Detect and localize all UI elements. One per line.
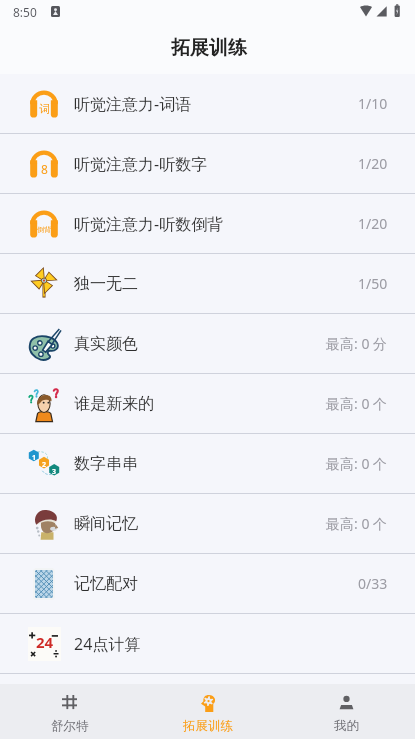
button[interactable]: 真实颜色 [0, 314, 415, 373]
staticText: 最高: 0 个 [326, 514, 388, 533]
staticText: 听觉注意力-听数字 [74, 153, 208, 175]
button[interactable]: 8 [0, 134, 415, 193]
button[interactable]: 我的 [277, 684, 415, 739]
button[interactable]: 瞬间记忆 [0, 494, 415, 553]
button[interactable]: 倒背 [0, 194, 415, 253]
other: 拓展训练 [201, 695, 216, 712]
staticText: 最高: 0 个 [326, 394, 388, 413]
staticText: 3 [52, 467, 57, 477]
staticText: 1 [32, 453, 37, 463]
staticText: 记忆配对 [74, 574, 138, 594]
staticText: 1/10 [358, 94, 388, 113]
staticText: 24 [36, 632, 54, 652]
staticText: 听觉注意力-词语 [74, 93, 192, 115]
staticText: 8 [41, 161, 48, 177]
button[interactable]: 舒尔特 [0, 684, 139, 739]
staticText: 8:50 [13, 4, 37, 20]
button[interactable]: 记忆配对 [0, 554, 415, 613]
button[interactable]: 独一无二 [0, 254, 415, 313]
staticText: 1/50 [358, 274, 388, 293]
staticText: 词 [39, 102, 50, 116]
staticText: 瞬间记忆 [74, 514, 138, 534]
staticText: 我的 [334, 718, 359, 734]
button[interactable]: 拓展训练 [139, 684, 277, 739]
staticText: 拓展训练 [183, 718, 233, 734]
staticText: 真实颜色 [74, 334, 138, 354]
staticText: 最高: 0 个 [326, 454, 388, 473]
staticText: 数字串串 [74, 454, 138, 474]
staticText: 1/20 [358, 154, 388, 173]
staticText: 1/20 [358, 214, 388, 233]
staticText: 0/33 [358, 574, 388, 593]
staticText: 最高: 0 分 [326, 334, 388, 353]
button[interactable]: 1 [0, 434, 415, 493]
staticText: 舒尔特 [51, 718, 89, 734]
staticText: 拓展训练 [171, 36, 247, 60]
button[interactable]: 词 [0, 74, 415, 133]
button[interactable]: 24 [0, 614, 415, 673]
staticText: 2 [42, 460, 47, 470]
staticText: 倒背 [37, 225, 51, 234]
staticText: 24点计算 [74, 633, 141, 655]
staticText: 听觉注意力-听数倒背 [74, 213, 224, 235]
staticText: 独一无二 [74, 274, 138, 294]
button[interactable]: 谁是新来的 [0, 374, 415, 433]
staticText: 谁是新来的 [74, 394, 154, 414]
